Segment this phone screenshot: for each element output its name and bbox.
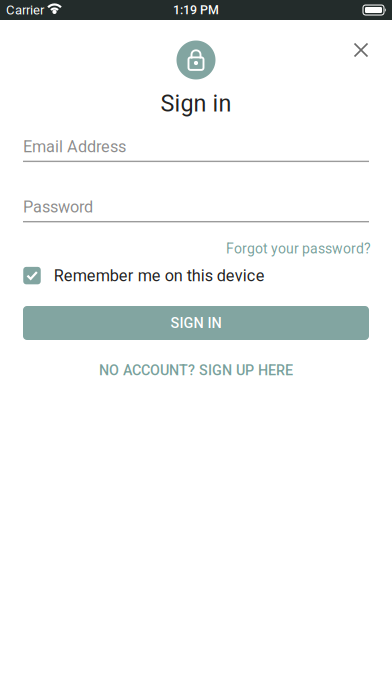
button[interactable]: Close — [346, 35, 376, 65]
button[interactable]: NO ACCOUNT? SIGN UP HERE — [99, 362, 293, 379]
button[interactable]: Email Address — [23, 137, 369, 162]
button[interactable]: SIGN IN — [23, 306, 369, 340]
staticText: NO ACCOUNT? SIGN UP HERE — [99, 362, 293, 379]
staticText: Password — [23, 197, 93, 216]
button[interactable]: Remember me on this device — [23, 266, 265, 285]
staticText: Sign in — [160, 90, 231, 117]
staticText: 1:19 PM — [173, 3, 219, 17]
button[interactable]: Forgot your password? — [226, 240, 371, 257]
staticText: Email Address — [23, 137, 126, 156]
staticText: Carrier — [6, 2, 44, 18]
staticText: Forgot your password? — [226, 240, 371, 257]
staticText: SIGN IN — [170, 315, 221, 331]
button[interactable]: Password — [23, 197, 369, 222]
staticText: Remember me on this device — [54, 266, 265, 285]
